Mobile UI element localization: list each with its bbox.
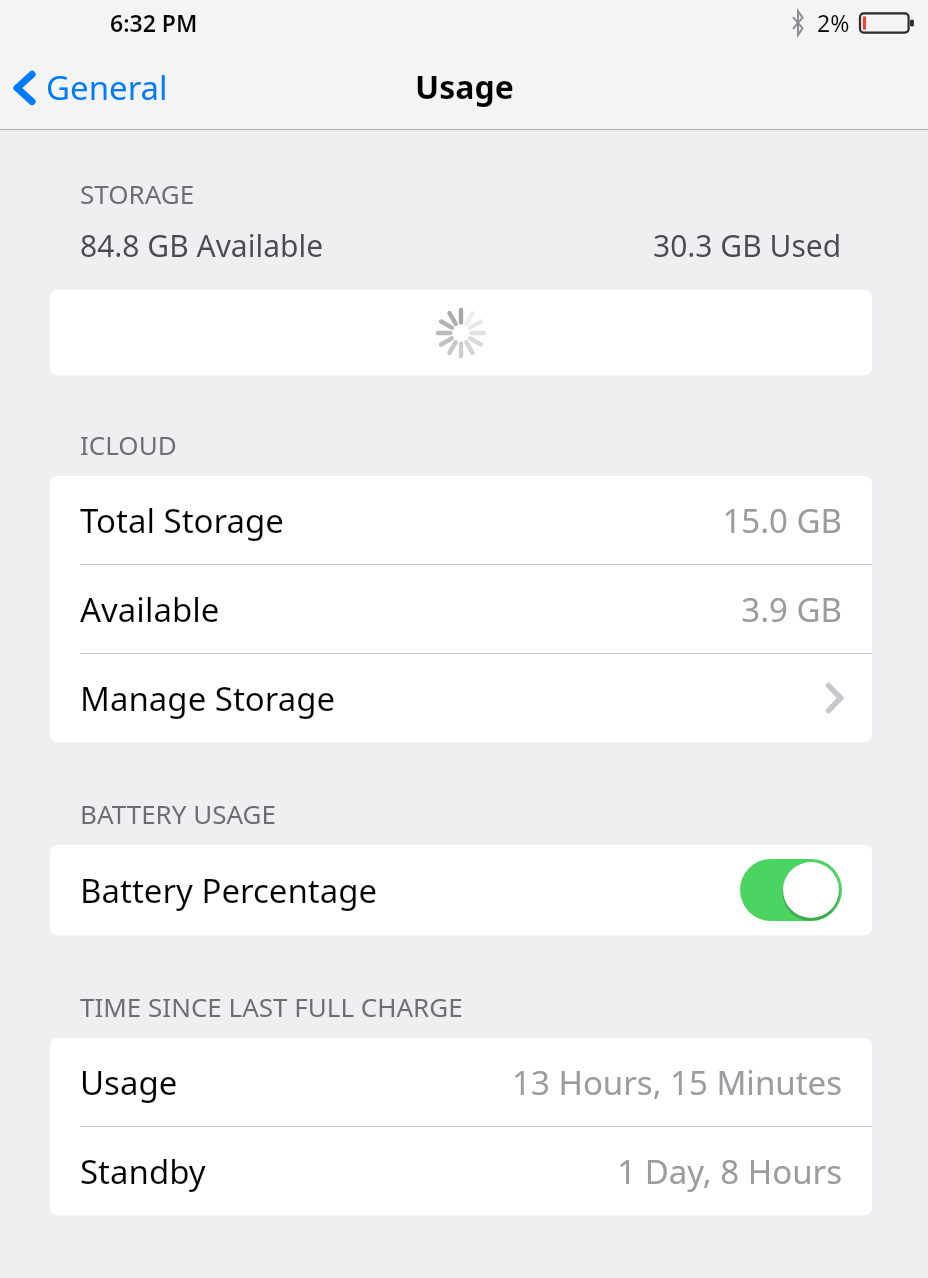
staticText: Standby: [80, 1149, 617, 1194]
staticText: ICLOUD: [80, 427, 177, 462]
button[interactable]: Standby: [50, 1127, 872, 1215]
button[interactable]: Usage: [50, 1038, 872, 1126]
staticText: 3.9 GB: [741, 587, 842, 632]
staticText: 13 Hours, 15 Minutes: [512, 1060, 842, 1105]
staticText: 30.3 GB Used: [653, 225, 842, 266]
button[interactable]: Manage Storage: [50, 654, 872, 742]
staticText: 2%: [817, 7, 850, 38]
button[interactable]: Battery Percentage: [50, 845, 872, 935]
staticText: Usage: [415, 65, 514, 109]
button[interactable]: Total Storage: [50, 476, 872, 564]
staticText: TIME SINCE LAST FULL CHARGE: [80, 989, 463, 1024]
staticText: BATTERY USAGE: [80, 796, 276, 831]
staticText: General: [46, 65, 168, 110]
button[interactable]: Available: [50, 565, 872, 653]
staticText: Usage: [80, 1060, 512, 1105]
staticText: Available: [80, 587, 741, 632]
button[interactable]: General: [8, 57, 174, 118]
staticText: STORAGE: [80, 176, 195, 211]
staticText: 15.0 GB: [722, 498, 842, 543]
staticText: 84.8 GB Available: [80, 225, 324, 266]
staticText: Total Storage: [80, 498, 722, 543]
staticText: Manage Storage: [80, 676, 826, 721]
button[interactable]: Battery Percentage toggle, on: [740, 859, 842, 921]
staticText: 1 Day, 8 Hours: [617, 1149, 842, 1194]
staticText: Battery Percentage: [80, 868, 740, 913]
staticText: 6:32 PM: [110, 7, 198, 38]
